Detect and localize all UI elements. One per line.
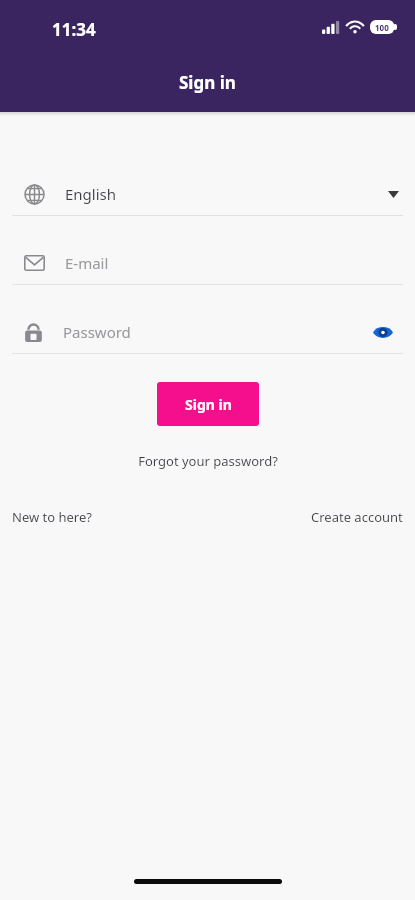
staticText: 100	[375, 22, 389, 33]
button[interactable]: Sign in	[157, 382, 259, 426]
button[interactable]: English	[0, 173, 415, 215]
button[interactable]: E-mail	[0, 242, 415, 284]
button[interactable]: Create account	[311, 504, 403, 530]
staticText: New to here?	[12, 508, 92, 526]
staticText: E-mail	[65, 253, 109, 273]
staticText: Create account	[311, 508, 403, 526]
other: E-mail	[24, 255, 45, 271]
button[interactable]: Password	[0, 311, 415, 353]
staticText: Sign in	[179, 71, 236, 94]
button[interactable]: Show password	[367, 316, 399, 348]
button[interactable]: Forgot your password?	[128, 448, 288, 474]
staticText: Password	[63, 322, 131, 342]
staticText: Forgot your password?	[138, 452, 278, 470]
staticText: English	[65, 184, 117, 204]
button[interactable]: New to here?	[12, 504, 92, 530]
staticText: 11:34	[52, 18, 96, 41]
other: Password	[24, 322, 43, 343]
staticText: Sign in	[185, 395, 232, 414]
